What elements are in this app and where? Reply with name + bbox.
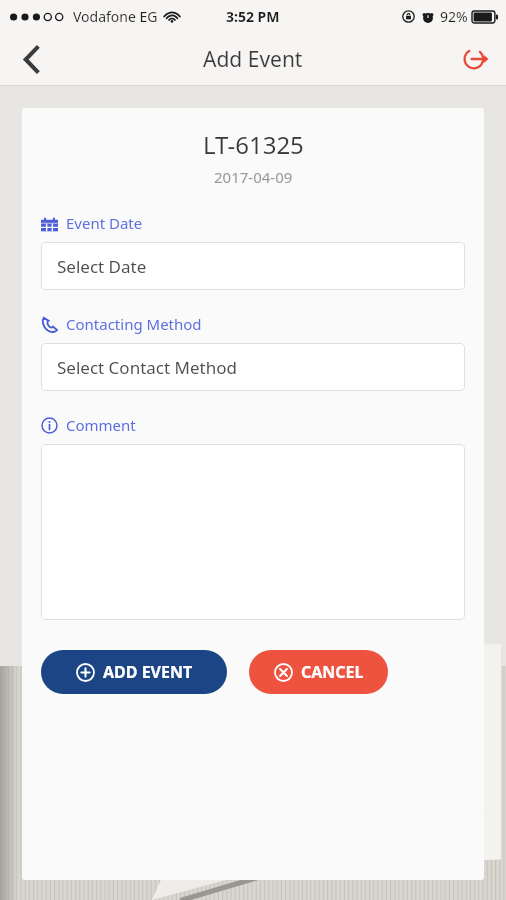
- staticText: 92%: [440, 7, 468, 26]
- button[interactable]: Select Contact Method: [41, 343, 465, 391]
- button[interactable]: Back: [0, 32, 62, 86]
- staticText: Select Date: [57, 255, 147, 278]
- staticText: Add Event: [203, 45, 303, 74]
- button[interactable]: ADD EVENT: [41, 650, 227, 694]
- staticText: 3:52 PM: [226, 7, 280, 26]
- button[interactable]: Select Date: [41, 242, 465, 290]
- staticText: CANCEL: [301, 661, 364, 683]
- button[interactable]: CANCEL: [249, 650, 388, 694]
- button[interactable]: Sign out: [446, 32, 506, 86]
- staticText: Vodafone EG: [73, 7, 158, 26]
- button[interactable]: [41, 444, 465, 620]
- staticText: Select Contact Method: [57, 356, 237, 379]
- staticText: 2017-04-09: [214, 167, 293, 187]
- staticText: Event Date: [66, 213, 143, 233]
- staticText: LT-61325: [203, 128, 304, 161]
- staticText: Comment: [66, 415, 136, 435]
- staticText: Contacting Method: [66, 314, 202, 334]
- staticText: ADD EVENT: [103, 661, 193, 683]
